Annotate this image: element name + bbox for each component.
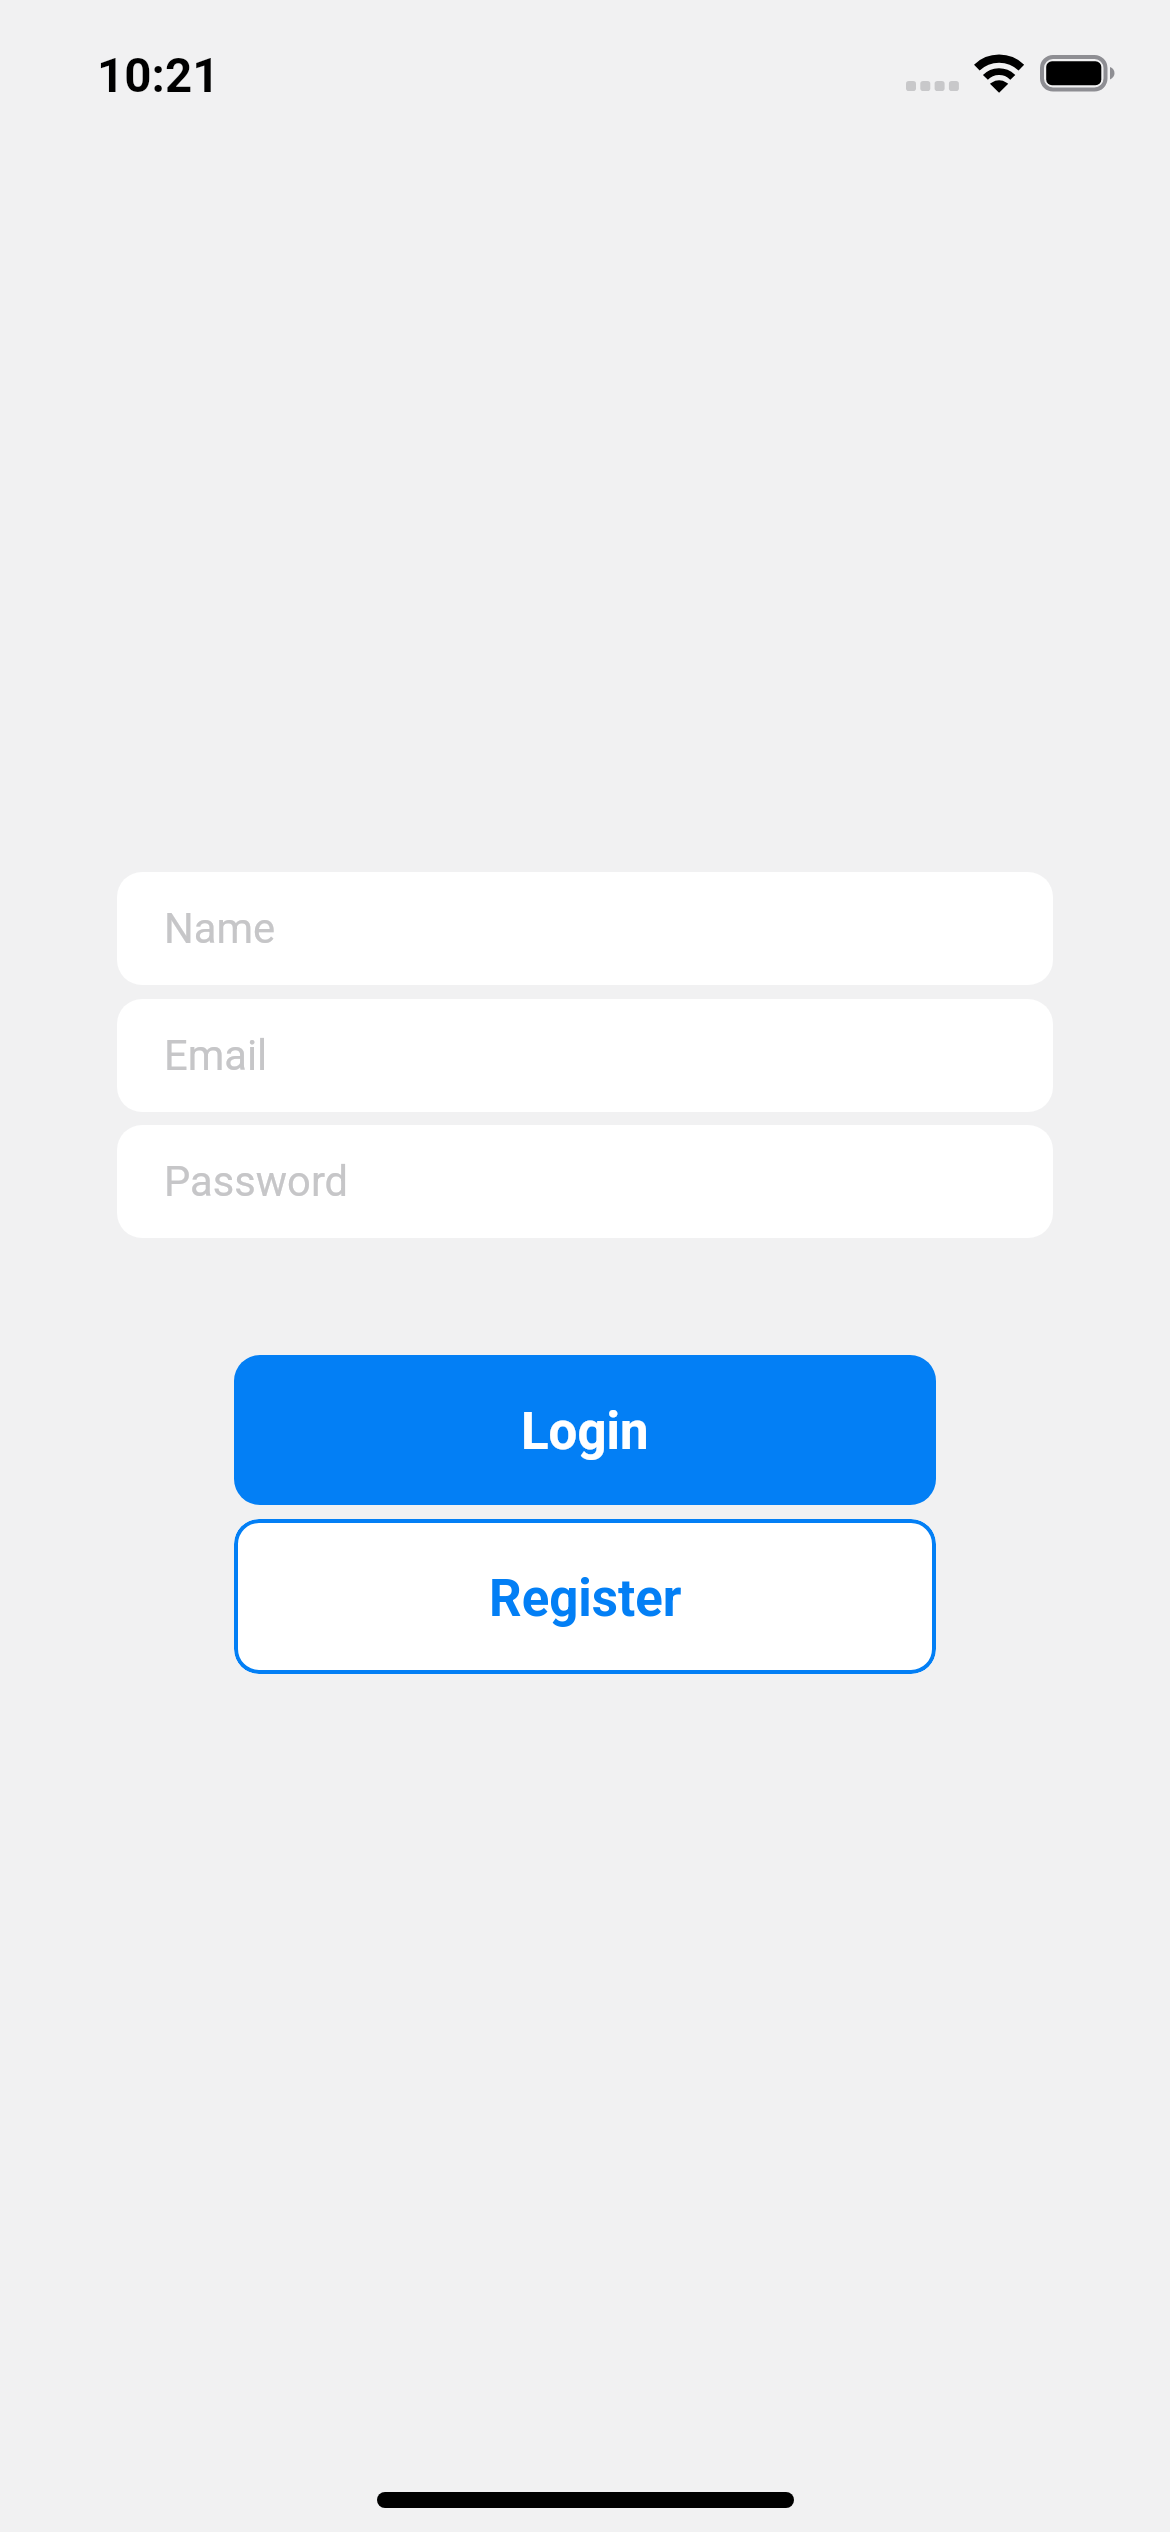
button[interactable]: Password: [117, 1125, 1053, 1238]
other: Wi-Fi: [970, 50, 1030, 95]
button[interactable]: Login: [234, 1355, 936, 1505]
other: Battery: [1040, 55, 1116, 92]
button[interactable]: Name: [117, 872, 1053, 985]
button[interactable]: Email: [117, 999, 1053, 1112]
button[interactable]: Register: [234, 1519, 936, 1674]
staticText: Login: [521, 1402, 649, 1462]
other: Cellular signal: [906, 81, 959, 91]
staticText: Email: [164, 1031, 268, 1080]
staticText: Name: [164, 904, 276, 953]
staticText: Password: [164, 1157, 349, 1206]
staticText: 10:21: [97, 48, 220, 104]
staticText: Register: [489, 1569, 682, 1629]
